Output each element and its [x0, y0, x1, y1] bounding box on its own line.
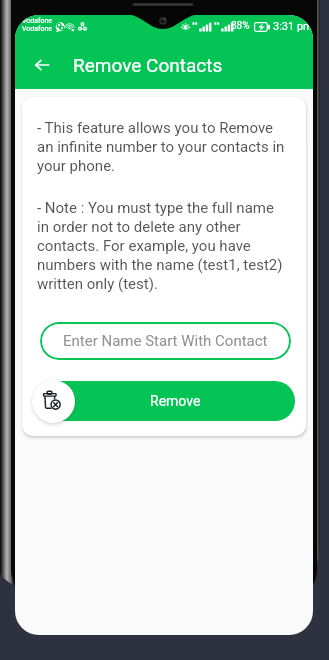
staticText: - This feature allows you to Remove an i…	[37, 119, 288, 175]
button[interactable]: Remove	[40, 381, 295, 421]
button[interactable]: Enter Name Start With Contact	[40, 322, 291, 360]
staticText: Remove Contacts	[73, 54, 223, 76]
staticText: Vodafone	[22, 25, 53, 33]
staticText: - Note : You must type the full name in …	[37, 199, 288, 293]
staticText: 3:31 pm	[273, 20, 313, 33]
staticText: Enter Name Start With Contact	[63, 332, 268, 350]
staticText: 88%	[231, 20, 250, 32]
staticText: Vodafone	[22, 17, 53, 25]
button[interactable]: Remove contact	[32, 380, 75, 423]
staticText: Remove	[150, 393, 201, 409]
button[interactable]: Back	[24, 47, 60, 83]
